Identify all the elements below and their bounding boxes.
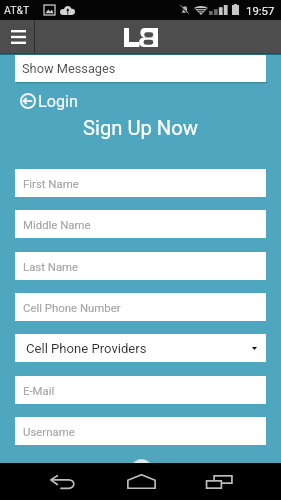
staticText: Sign Up Now (0, 116, 281, 140)
button[interactable]: Cell Phone Providers (15, 334, 266, 362)
button[interactable]: Show Messages (15, 55, 266, 82)
staticText: Last Name (23, 260, 79, 273)
button[interactable]: Open navigation menu (0, 20, 34, 54)
staticText: Username (23, 425, 75, 438)
button[interactable]: First Name (15, 169, 266, 197)
staticText: Show Messages (22, 61, 116, 76)
staticText: AT&T (4, 4, 30, 16)
button[interactable]: Last Name (15, 252, 266, 280)
staticText: 19:57 (246, 4, 275, 17)
button[interactable]: Cell Phone Number (15, 293, 266, 321)
staticText: First Name (23, 177, 79, 190)
button[interactable]: Recent apps (184, 463, 254, 500)
staticText: Login (38, 92, 78, 111)
staticText: Cell Phone Providers (26, 341, 147, 356)
button[interactable]: Login (20, 91, 78, 110)
button[interactable]: Back (28, 463, 98, 500)
button[interactable]: Middle Name (15, 210, 266, 238)
staticText: Middle Name (23, 218, 91, 231)
button[interactable]: Username (15, 417, 266, 445)
staticText: Cell Phone Number (23, 301, 121, 314)
button[interactable]: Home (106, 463, 176, 500)
button[interactable]: E-Mail (15, 376, 266, 404)
staticText: E-Mail (23, 384, 55, 397)
